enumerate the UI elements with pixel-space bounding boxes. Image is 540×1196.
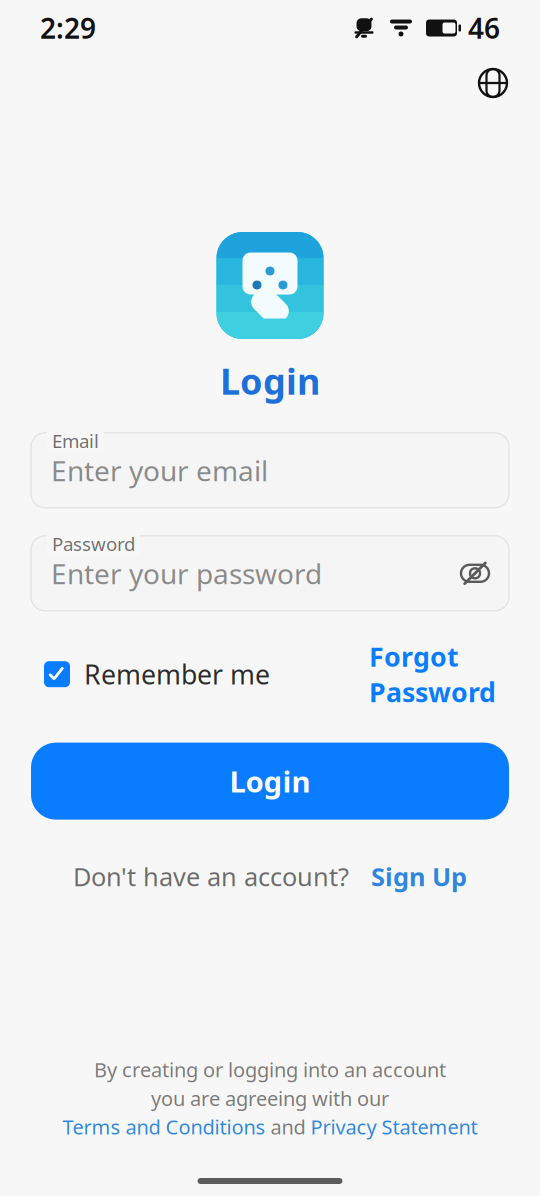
staticText: Forgot Password [369, 639, 496, 710]
button[interactable]: Login [31, 743, 509, 820]
staticText: 46 [468, 9, 500, 47]
staticText: you are agreeing with our [151, 1085, 389, 1111]
button[interactable]: Change language [470, 60, 516, 106]
button[interactable]: Remember me [44, 656, 270, 692]
button[interactable]: Show password [455, 553, 495, 593]
staticText: Don't have an account? [73, 860, 349, 893]
staticText: Enter your email [51, 452, 268, 489]
button[interactable]: Sign Up [371, 860, 467, 893]
staticText: Sign Up [371, 860, 467, 893]
button[interactable]: Privacy Statement [310, 1113, 477, 1140]
staticText: and [265, 1113, 310, 1140]
staticText: Remember me [84, 656, 270, 692]
button[interactable]: Forgot Password [369, 639, 496, 710]
staticText: Login [220, 357, 320, 405]
staticText: By creating or logging into an account [94, 1056, 446, 1083]
staticText: Password [52, 531, 135, 556]
staticText: Terms and Conditions [62, 1113, 265, 1140]
button[interactable]: Terms and Conditions [62, 1113, 265, 1140]
staticText: Enter your password [51, 555, 322, 592]
staticText: Email [52, 428, 99, 453]
staticText: 2:29 [40, 9, 96, 47]
staticText: Privacy Statement [310, 1113, 477, 1140]
staticText: Login [229, 762, 310, 801]
